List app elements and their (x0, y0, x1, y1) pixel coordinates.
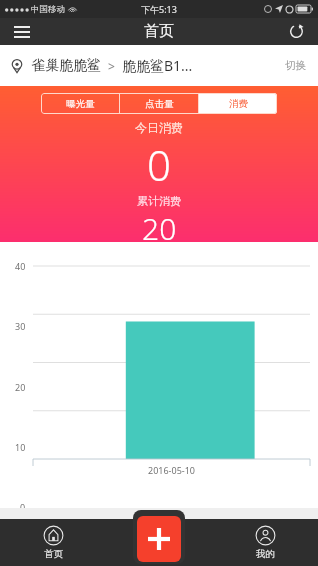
staticText: 雀巢脆脆鲨 (31, 57, 101, 75)
staticText: 20 (15, 381, 26, 393)
staticText: 0 (20, 501, 26, 513)
staticText: 首页 (44, 548, 63, 560)
staticText: 消费 (229, 98, 248, 110)
staticText: 切换 (285, 59, 306, 72)
button[interactable]: 曝光量 (41, 93, 119, 114)
staticText: 2016-05-10 (33, 464, 310, 476)
staticText: > (108, 58, 115, 74)
button[interactable]: Menu (0, 18, 44, 45)
button[interactable]: Add (133, 510, 185, 564)
staticText: 0 (147, 136, 171, 193)
staticText: 20 (142, 208, 177, 242)
staticText: 曝光量 (66, 98, 95, 110)
staticText: 点击量 (145, 98, 174, 110)
staticText: 今日消费 (135, 120, 183, 135)
button[interactable]: 切换 (283, 55, 308, 76)
button[interactable]: 首页 (0, 519, 106, 566)
staticText: 30 (15, 320, 26, 332)
button[interactable]: 消费 (199, 93, 277, 114)
staticText: 10 (15, 441, 26, 453)
staticText: 下午5:13 (141, 3, 177, 15)
staticText: 中国移动 (31, 4, 65, 15)
button[interactable]: 我的 (212, 519, 318, 566)
staticText: 我的 (256, 548, 275, 560)
staticText: 脆脆鲨B1... (122, 56, 193, 75)
staticText: 40 (15, 260, 26, 272)
button[interactable]: 雀巢脆脆鲨 (10, 45, 308, 86)
staticText: 首页 (144, 22, 174, 41)
button[interactable]: Refresh (274, 18, 318, 45)
button[interactable]: 点击量 (120, 93, 198, 114)
staticText: 累计消费 (137, 194, 181, 208)
